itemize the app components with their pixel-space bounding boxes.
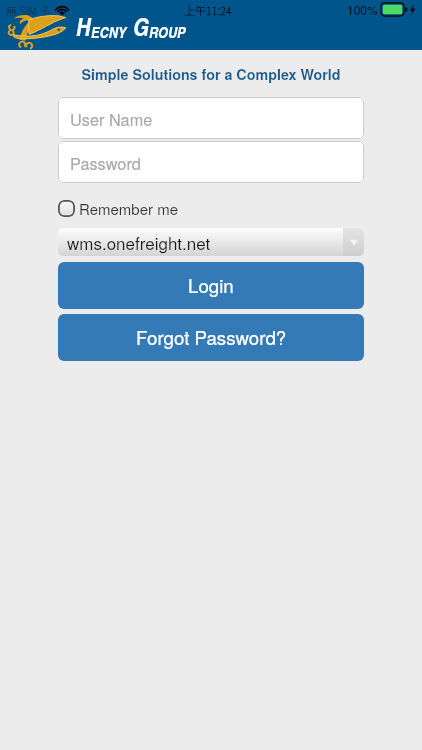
staticText: 上午11:24	[184, 2, 232, 18]
staticText: Login	[188, 272, 234, 299]
other: Hecny Group logo	[8, 14, 66, 48]
button[interactable]: Forgot Password?	[58, 314, 364, 361]
staticText: wms.onefreight.net	[67, 230, 211, 254]
staticText: 無 SIM 卡	[6, 2, 51, 18]
button[interactable]: Password	[58, 141, 364, 183]
staticText: Simple Solutions for a Complex World	[0, 64, 422, 84]
other: Remember me checkbox	[58, 200, 75, 217]
staticText: Password	[70, 151, 141, 174]
button[interactable]: User Name	[58, 97, 364, 139]
staticText: G	[133, 9, 149, 43]
staticText: Forgot Password?	[136, 324, 287, 351]
button[interactable]: Login	[58, 262, 364, 309]
button[interactable]: wms.onefreight.net	[58, 228, 364, 256]
other: Wi-Fi	[55, 5, 69, 15]
staticText: H	[76, 9, 91, 43]
other: Battery 100%, charging	[381, 3, 417, 16]
button[interactable]: Remember me checkbox	[58, 198, 179, 219]
staticText: Remember me	[79, 198, 179, 219]
staticText: 100%	[347, 1, 378, 18]
staticText: User Name	[70, 107, 153, 130]
staticText: ECNY	[91, 21, 127, 43]
staticText: ROUP	[149, 21, 186, 43]
